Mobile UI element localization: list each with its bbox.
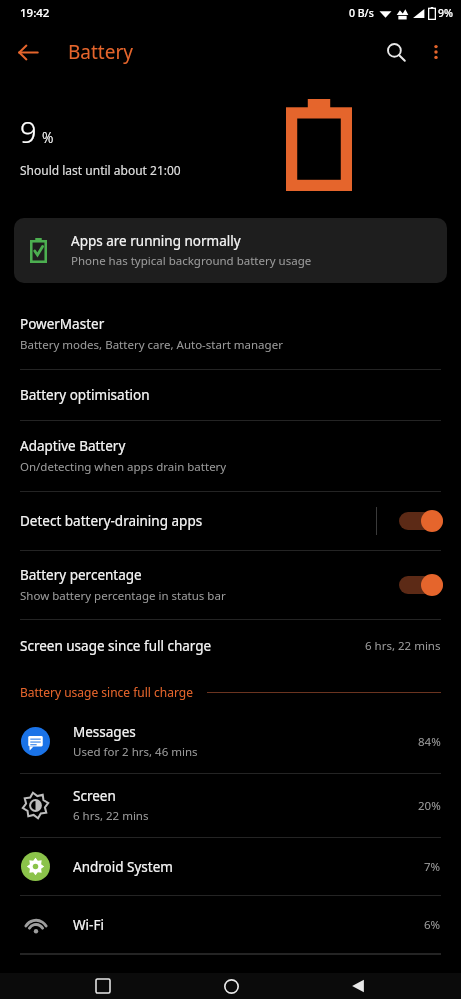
staticText: 9 [20, 112, 37, 151]
staticText: % [42, 128, 54, 147]
button[interactable]: Battery percentage [0, 551, 461, 619]
button[interactable]: Search [375, 31, 417, 73]
button[interactable]: Detect battery-draining apps [399, 510, 443, 532]
staticText: 20% [418, 798, 441, 814]
button[interactable]: Screen usage since full charge [0, 620, 461, 672]
staticText: On/detecting when apps drain battery [20, 459, 227, 475]
button[interactable]: Messages [0, 710, 461, 773]
button[interactable]: PowerMaster [0, 299, 461, 369]
staticText: 19:42 [20, 5, 50, 21]
staticText: Detect battery-draining apps [20, 512, 203, 530]
button[interactable]: Android System [0, 838, 461, 895]
button[interactable]: Recents [79, 973, 127, 999]
staticText: Battery usage since full charge [20, 684, 193, 700]
staticText: 6 hrs, 22 mins [73, 808, 149, 824]
staticText: Should last until about 21:00 [20, 162, 181, 178]
staticText: Phone has typical background battery usa… [71, 253, 312, 269]
staticText: 84% [418, 734, 441, 750]
staticText: Screen [73, 787, 116, 805]
staticText: PowerMaster [20, 315, 105, 333]
staticText: Android System [73, 858, 173, 876]
staticText: Adaptive Battery [20, 437, 126, 455]
staticText: 6% [424, 917, 441, 933]
staticText: 6 hrs, 22 mins [365, 638, 441, 654]
staticText: Used for 2 hrs, 46 mins [73, 744, 198, 760]
button[interactable]: Adaptive Battery [0, 421, 461, 491]
button[interactable]: More options [417, 33, 455, 71]
staticText: Wi-Fi [73, 916, 104, 934]
button[interactable]: Apps are running normally [14, 218, 447, 283]
button[interactable]: Back [10, 34, 46, 70]
button[interactable]: Battery percentage [399, 574, 443, 596]
button[interactable]: Battery optimisation [0, 370, 461, 420]
staticText: 7% [424, 859, 441, 875]
staticText: Show battery percentage in status bar [20, 588, 226, 604]
staticText: Messages [73, 723, 136, 741]
button[interactable]: Home [207, 973, 255, 999]
staticText: Battery [68, 39, 133, 65]
button[interactable]: Wi-Fi [0, 896, 461, 953]
staticText: Battery percentage [20, 566, 142, 584]
button[interactable]: Screen [0, 774, 461, 837]
button[interactable]: Back [334, 973, 382, 999]
staticText: Apps are running normally [71, 232, 241, 250]
staticText: Battery optimisation [20, 386, 150, 404]
staticText: 9% [438, 6, 453, 20]
staticText: Screen usage since full charge [20, 637, 365, 655]
staticText: Battery modes, Battery care, Auto-start … [20, 337, 283, 353]
staticText: 0 B/s [349, 6, 374, 20]
button[interactable]: Detect battery-draining apps [0, 492, 461, 550]
